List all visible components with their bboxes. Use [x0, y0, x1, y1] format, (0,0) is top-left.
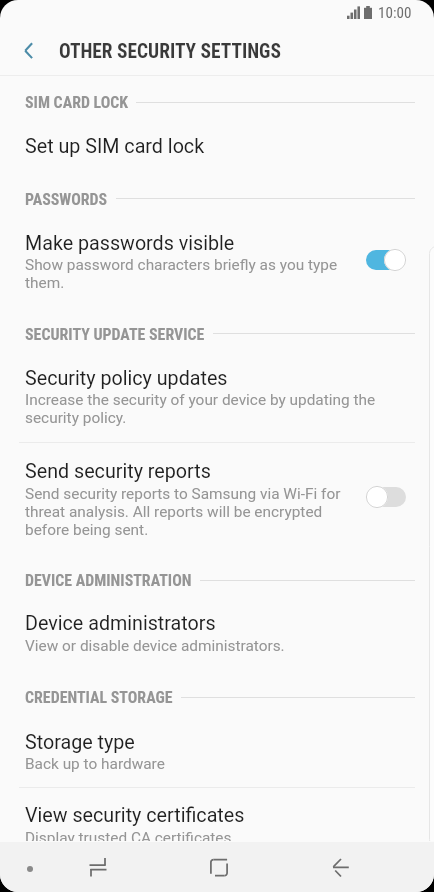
- staticText: Back up to hardware: [25, 755, 165, 773]
- button[interactable]: [0, 442, 434, 551]
- staticText: Storage type: [25, 731, 135, 754]
- button[interactable]: Home: [195, 844, 243, 891]
- staticText: View security certificates: [25, 804, 245, 827]
- staticText: Display trusted CA certificates.: [25, 829, 236, 841]
- staticText: Make passwords visible: [25, 232, 235, 255]
- button[interactable]: [0, 349, 434, 441]
- staticText: Increase the security of your device by …: [25, 391, 381, 427]
- button[interactable]: Toggle on: [366, 249, 406, 271]
- button[interactable]: [0, 595, 434, 668]
- staticText: SIM CARD LOCK: [25, 93, 129, 112]
- button[interactable]: Toggle off: [366, 486, 406, 508]
- button[interactable]: Navigate up: [8, 27, 50, 73]
- staticText: Send security reports: [25, 460, 211, 483]
- staticText: 10:00: [378, 4, 412, 22]
- button[interactable]: [0, 214, 434, 305]
- staticText: PASSWORDS: [25, 190, 108, 209]
- staticText: Security policy updates: [25, 367, 228, 390]
- button[interactable]: [0, 713, 434, 787]
- staticText: Set up SIM card lock: [25, 135, 205, 158]
- staticText: View or disable device administrators.: [25, 637, 285, 655]
- staticText: OTHER SECURITY SETTINGS: [59, 40, 281, 63]
- staticText: Send security reports to Samsung via Wi-…: [25, 485, 347, 539]
- button[interactable]: Recent apps: [74, 844, 122, 891]
- staticText: SECURITY UPDATE SERVICE: [25, 325, 205, 344]
- staticText: Show password characters briefly as you …: [25, 256, 347, 292]
- button[interactable]: Back: [317, 844, 365, 891]
- button[interactable]: [0, 117, 434, 170]
- staticText: CREDENTIAL STORAGE: [25, 688, 173, 707]
- button[interactable]: [0, 788, 434, 841]
- staticText: Device administrators: [25, 612, 216, 635]
- staticText: DEVICE ADMINISTRATION: [25, 571, 192, 590]
